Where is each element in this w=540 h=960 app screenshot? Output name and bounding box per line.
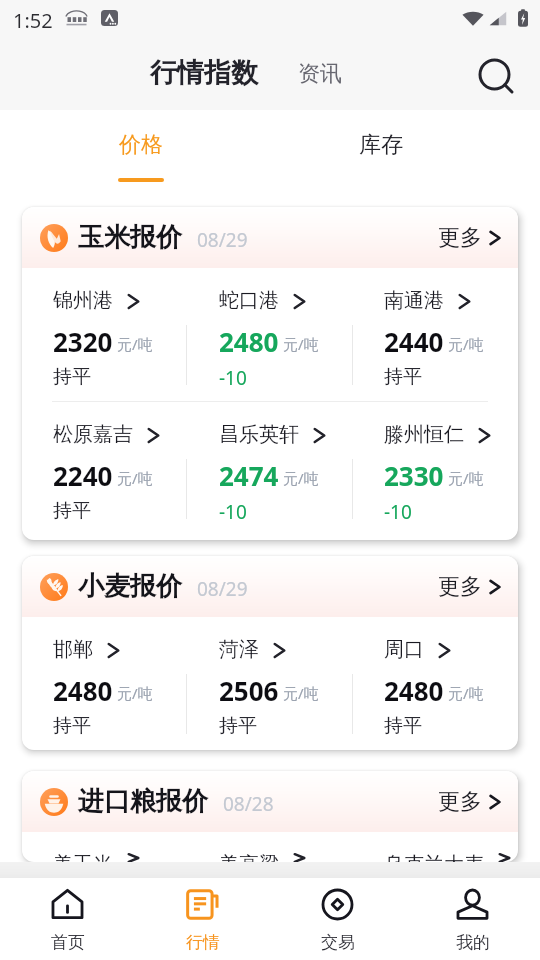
staticText: 蛇口港 bbox=[219, 288, 279, 313]
staticText: 玉米报价 bbox=[78, 221, 182, 254]
staticText: 南通港 bbox=[384, 288, 444, 313]
staticText: 邯郸 bbox=[53, 637, 93, 662]
staticText: 2440 bbox=[384, 324, 444, 359]
button[interactable]: 更多 bbox=[438, 224, 503, 252]
staticText: 08/29 bbox=[197, 227, 248, 253]
button[interactable]: 美玉米 bbox=[22, 832, 188, 862]
button[interactable]: 行情指数 bbox=[150, 56, 258, 90]
staticText: 进口粮报价 bbox=[78, 785, 208, 818]
staticText: 2320 bbox=[53, 324, 113, 359]
staticText: 菏泽 bbox=[219, 637, 259, 662]
staticText: 元/吨 bbox=[448, 683, 484, 703]
staticText: 08/28 bbox=[223, 791, 274, 817]
staticText: 元/吨 bbox=[117, 468, 153, 488]
staticText: 持平 bbox=[219, 714, 257, 738]
staticText: 锦州港 bbox=[53, 288, 113, 313]
button[interactable]: 更多 bbox=[438, 788, 503, 816]
button[interactable]: 玉米报价 bbox=[22, 207, 518, 268]
staticText: 美玉米 bbox=[53, 852, 113, 862]
button[interactable]: Search bbox=[472, 46, 518, 92]
staticText: 交易 bbox=[321, 932, 355, 953]
staticText: 08/29 bbox=[197, 576, 248, 602]
staticText: 2240 bbox=[53, 458, 113, 493]
button[interactable]: 美高粱 bbox=[188, 832, 353, 862]
button[interactable]: 菏泽 bbox=[188, 617, 353, 738]
staticText: 更多 bbox=[438, 573, 482, 601]
staticText: 元/吨 bbox=[117, 683, 153, 703]
staticText: 滕州恒仁 bbox=[384, 422, 464, 447]
button[interactable]: 资讯 bbox=[298, 60, 342, 88]
staticText: 元/吨 bbox=[448, 468, 484, 488]
staticText: 持平 bbox=[384, 365, 422, 389]
button[interactable]: 锦州港 bbox=[22, 268, 188, 389]
staticText: 周口 bbox=[384, 637, 424, 662]
button[interactable]: 滕州恒仁 bbox=[353, 402, 518, 525]
staticText: 2330 bbox=[384, 458, 444, 493]
button[interactable]: 南通港 bbox=[353, 268, 518, 389]
staticText: 2474 bbox=[219, 458, 279, 493]
staticText: 2480 bbox=[219, 324, 279, 359]
button[interactable]: 蛇口港 bbox=[188, 268, 353, 391]
button[interactable]: 更多 bbox=[438, 573, 503, 601]
staticText: 更多 bbox=[438, 224, 482, 252]
staticText: 元/吨 bbox=[283, 334, 319, 354]
staticText: 元/吨 bbox=[283, 468, 319, 488]
staticText: 价格 bbox=[119, 131, 163, 159]
staticText: 2480 bbox=[53, 673, 113, 708]
staticText: 昌乐英轩 bbox=[219, 422, 299, 447]
button[interactable]: 我的 bbox=[405, 878, 540, 960]
button[interactable]: 乌克兰大麦 bbox=[353, 832, 518, 862]
staticText: 1:52 bbox=[13, 7, 53, 34]
button[interactable]: 周口 bbox=[353, 617, 518, 738]
staticText: 乌克兰大麦 bbox=[384, 852, 484, 862]
staticText: 行情 bbox=[186, 932, 220, 953]
staticText: 持平 bbox=[53, 714, 91, 738]
staticText: 元/吨 bbox=[117, 334, 153, 354]
button[interactable]: 交易 bbox=[270, 878, 405, 960]
button[interactable]: 价格 bbox=[93, 110, 189, 190]
staticText: 持平 bbox=[53, 499, 91, 523]
staticText: -10 bbox=[384, 499, 412, 525]
staticText: 我的 bbox=[456, 932, 490, 953]
button[interactable]: 进口粮报价 bbox=[22, 771, 518, 832]
staticText: 元/吨 bbox=[283, 683, 319, 703]
button[interactable]: 小麦报价 bbox=[22, 556, 518, 617]
button[interactable]: 库存 bbox=[333, 110, 429, 190]
button[interactable]: 首页 bbox=[0, 878, 135, 960]
staticText: 首页 bbox=[51, 932, 85, 953]
staticText: 持平 bbox=[53, 365, 91, 389]
button[interactable]: 昌乐英轩 bbox=[188, 402, 353, 525]
staticText: 松原嘉吉 bbox=[53, 422, 133, 447]
staticText: 2506 bbox=[219, 673, 279, 708]
staticText: 库存 bbox=[359, 131, 403, 159]
button[interactable]: 松原嘉吉 bbox=[22, 402, 188, 523]
staticText: 更多 bbox=[438, 788, 482, 816]
staticText: 元/吨 bbox=[448, 334, 484, 354]
staticText: -10 bbox=[219, 365, 247, 391]
button[interactable]: 邯郸 bbox=[22, 617, 188, 738]
staticText: 2480 bbox=[384, 673, 444, 708]
staticText: 美高粱 bbox=[219, 852, 279, 862]
staticText: 持平 bbox=[384, 714, 422, 738]
staticText: 小麦报价 bbox=[78, 570, 182, 603]
button[interactable]: 行情 bbox=[135, 878, 270, 960]
staticText: -10 bbox=[219, 499, 247, 525]
